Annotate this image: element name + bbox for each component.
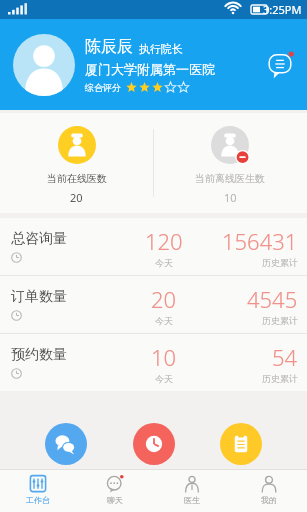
staticText: 工作台 bbox=[26, 495, 50, 505]
button[interactable]: 预约数量 bbox=[0, 334, 307, 391]
staticText: 120 bbox=[145, 226, 183, 256]
staticText: 预约数量 bbox=[11, 346, 67, 364]
staticText: 4545 bbox=[247, 284, 298, 314]
staticText: 54 bbox=[272, 342, 298, 372]
staticText: 当前离线医生数 bbox=[195, 172, 265, 185]
staticText: 20 bbox=[151, 284, 177, 314]
staticText: 历史累计 bbox=[262, 315, 298, 326]
staticText: 历史累计 bbox=[262, 373, 298, 384]
staticText: 订单数量 bbox=[11, 288, 67, 306]
staticText: 厦门大学附属第一医院 bbox=[85, 61, 215, 77]
staticText: 执行院长 bbox=[139, 42, 183, 56]
staticText: 156431 bbox=[222, 226, 298, 256]
button[interactable]: 当前离线医生数 bbox=[153, 113, 307, 213]
button[interactable]: Consultations bbox=[45, 423, 87, 465]
staticText: 当前在线医数 bbox=[47, 172, 107, 185]
staticText: 我的 bbox=[261, 495, 277, 505]
button[interactable]: 聊天 bbox=[76, 470, 153, 512]
button[interactable]: 我的 bbox=[230, 470, 307, 512]
staticText: 今天 bbox=[155, 257, 173, 268]
staticText: 今天 bbox=[155, 315, 173, 326]
staticText: 今天 bbox=[155, 373, 173, 384]
staticText: 3:25PM bbox=[263, 2, 302, 17]
button[interactable]: 当前在线医数 bbox=[0, 113, 153, 213]
staticText: 医生 bbox=[184, 495, 200, 505]
button[interactable]: Records bbox=[220, 423, 262, 465]
staticText: 总咨询量 bbox=[11, 230, 67, 248]
button[interactable]: 医生 bbox=[153, 470, 230, 512]
button[interactable]: 订单数量 bbox=[0, 276, 307, 333]
staticText: 陈辰辰 bbox=[85, 37, 133, 57]
staticText: 综合评分 bbox=[85, 82, 121, 93]
staticText: 10 bbox=[151, 342, 177, 372]
button[interactable]: Messages bbox=[263, 48, 297, 82]
staticText: 聊天 bbox=[107, 495, 123, 505]
staticText: 10 bbox=[224, 190, 237, 205]
button[interactable]: 总咨询量 bbox=[0, 218, 307, 275]
button[interactable]: 工作台 bbox=[0, 470, 76, 512]
staticText: 20 bbox=[70, 190, 83, 205]
button[interactable]: Reminders bbox=[133, 423, 175, 465]
staticText: 历史累计 bbox=[262, 257, 298, 268]
